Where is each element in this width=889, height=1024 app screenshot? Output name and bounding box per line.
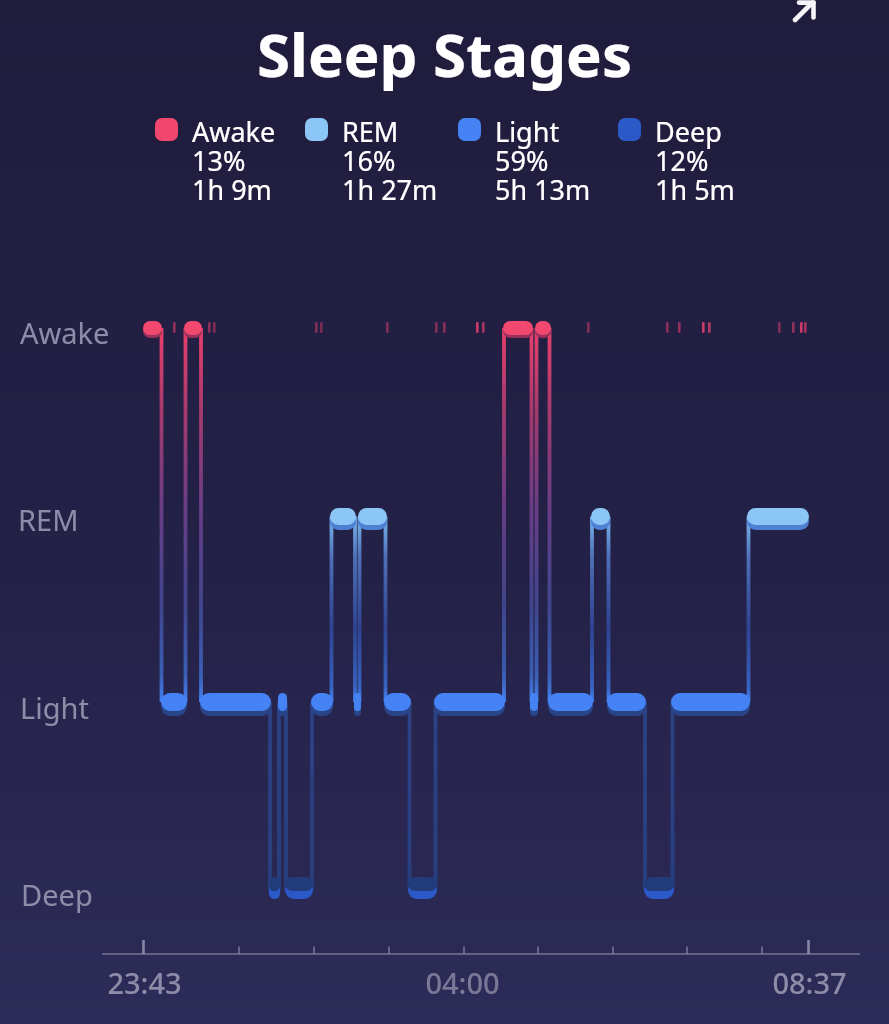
- button[interactable]: Light 59% 5h 13m: [458, 113, 591, 208]
- staticText: Awake: [20, 313, 110, 352]
- staticText: 23:43: [107, 963, 182, 1002]
- staticText: Awake 13% 1h 9m: [192, 113, 276, 208]
- staticText: Deep 12% 1h 5m: [655, 113, 735, 208]
- button[interactable]: Deep 12% 1h 5m: [618, 113, 735, 208]
- staticText: 04:00: [425, 963, 500, 1002]
- staticText: REM 16% 1h 27m: [342, 113, 438, 208]
- staticText: Light 59% 5h 13m: [495, 113, 591, 208]
- staticText: Light: [20, 688, 89, 727]
- staticText: 08:37: [772, 963, 847, 1002]
- button[interactable]: [786, 0, 822, 36]
- staticText: Deep: [21, 875, 93, 914]
- button[interactable]: Awake 13% 1h 9m: [155, 113, 276, 208]
- button[interactable]: Sleep Stages: [257, 13, 632, 95]
- staticText: REM: [18, 500, 79, 539]
- button[interactable]: REM 16% 1h 27m: [305, 113, 438, 208]
